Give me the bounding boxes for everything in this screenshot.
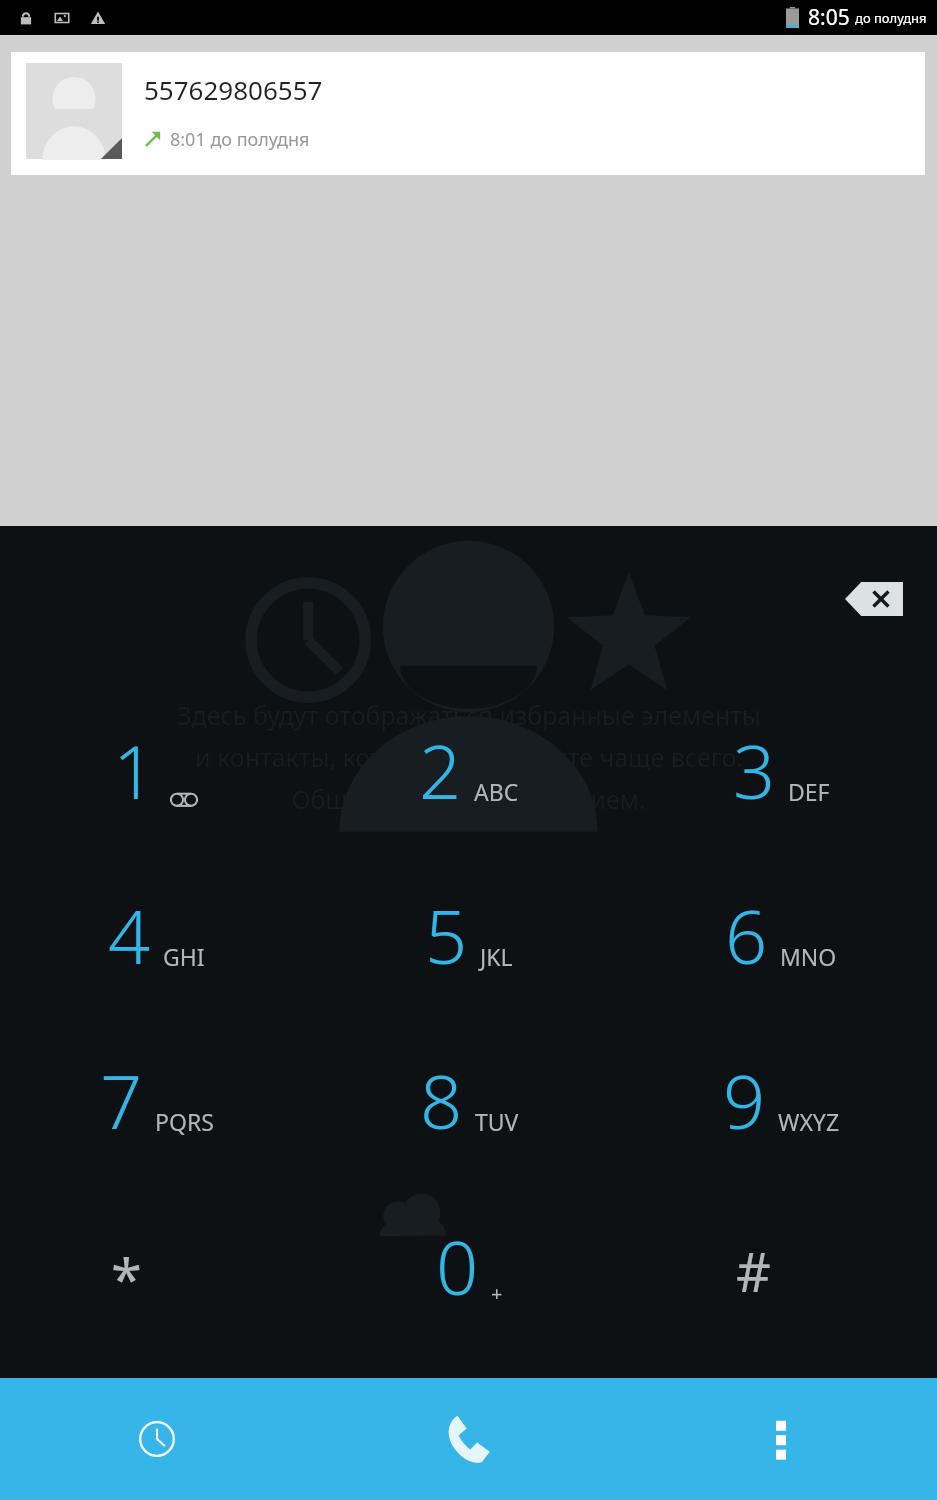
staticText: +: [491, 1280, 503, 1307]
staticText: 8:05: [808, 3, 850, 32]
staticText: 8:01 до полудня: [170, 127, 310, 152]
staticText: 6: [725, 885, 768, 986]
staticText: ABC: [474, 776, 519, 807]
button[interactable]: 7: [0, 1046, 313, 1212]
staticText: до полудня: [855, 9, 927, 27]
button[interactable]: 2: [313, 716, 625, 881]
staticText: 3: [733, 720, 776, 821]
button[interactable]: More options: [625, 1378, 937, 1500]
button[interactable]: #: [625, 1212, 937, 1378]
button[interactable]: 557629806557: [11, 52, 925, 175]
staticText: JKL: [480, 941, 513, 972]
staticText: 7: [100, 1050, 143, 1151]
staticText: 0: [436, 1216, 479, 1317]
button[interactable]: Dialpad: [313, 1378, 625, 1500]
button[interactable]: 0: [313, 1212, 625, 1378]
staticText: #: [736, 1234, 771, 1308]
button[interactable]: 4: [0, 881, 313, 1046]
staticText: и контакты, которым вы звоните чаще всег…: [195, 740, 743, 774]
staticText: PQRS: [155, 1106, 214, 1137]
staticText: *: [111, 1240, 142, 1316]
button[interactable]: 8: [313, 1046, 625, 1212]
staticText: 4: [108, 885, 151, 986]
button[interactable]: 6: [625, 881, 937, 1046]
staticText: Общайтесь с удовольствием.: [291, 782, 646, 816]
staticText: DEF: [788, 776, 830, 807]
staticText: MNO: [780, 941, 837, 972]
staticText: GHI: [163, 941, 205, 972]
button[interactable]: 3: [625, 716, 937, 881]
staticText: 5: [425, 885, 468, 986]
staticText: 1: [113, 720, 156, 821]
button[interactable]: *: [0, 1212, 313, 1378]
staticText: 8: [420, 1050, 463, 1151]
staticText: 557629806557: [144, 72, 323, 107]
staticText: WXYZ: [778, 1106, 840, 1137]
staticText: 9: [723, 1050, 766, 1151]
staticText: 2: [419, 720, 462, 821]
button[interactable]: 5: [313, 881, 625, 1046]
button[interactable]: 1: [0, 716, 313, 881]
staticText: Здесь будут отображаться избранные элеме…: [177, 698, 761, 732]
button[interactable]: Backspace: [845, 582, 903, 616]
staticText: TUV: [475, 1106, 519, 1137]
button[interactable]: Recents: [0, 1378, 313, 1500]
button[interactable]: 9: [625, 1046, 937, 1212]
